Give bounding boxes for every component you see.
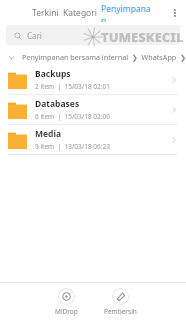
staticText: Penyimpanan	[101, 3, 154, 22]
button[interactable]: Pembersih	[98, 286, 142, 318]
staticText: Media	[35, 128, 62, 140]
staticText: MiDrop	[55, 307, 78, 316]
staticText: 2 item | 15/03/18 02:01	[35, 82, 110, 91]
staticText: Terkini	[32, 7, 59, 19]
button[interactable]: Penyimpanan bersama internal ❯ WhatsApp …	[0, 49, 186, 65]
button[interactable]: Terkini	[30, 4, 61, 22]
button[interactable]: Backups	[0, 65, 186, 95]
staticText: Kategori	[63, 7, 97, 19]
button[interactable]: More options	[164, 2, 186, 24]
button[interactable]: MiDrop	[44, 286, 88, 318]
staticText: Cari	[27, 30, 42, 41]
staticText: Backups	[35, 68, 71, 80]
button[interactable]: Media	[0, 125, 186, 155]
staticText: 9 item | 13/03/18 06:23	[35, 142, 110, 151]
staticText: TUMESKECIL	[101, 28, 184, 46]
staticText: 6 item | 15/03/18 02:00	[35, 112, 110, 121]
staticText: Databases	[35, 98, 80, 110]
button[interactable]: Penyimpanan	[99, 0, 156, 25]
button[interactable]: Databases	[0, 95, 186, 125]
staticText: Penyimpanan bersama internal ❯ WhatsApp …	[22, 52, 186, 62]
button[interactable]: Kategori	[61, 4, 99, 22]
staticText: Pembersih	[104, 307, 137, 316]
button[interactable]: Cari	[6, 25, 180, 45]
